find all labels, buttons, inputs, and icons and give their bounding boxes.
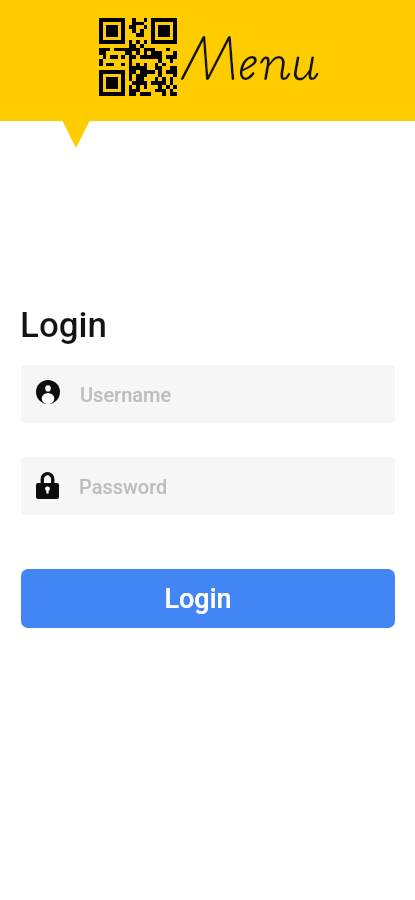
staticText: Menu: [182, 19, 320, 101]
staticText: Login: [164, 583, 232, 615]
button[interactable]: Username: [21, 365, 395, 423]
button[interactable]: Password: [21, 457, 395, 515]
button[interactable]: Login: [21, 569, 395, 628]
staticText: Password: [79, 475, 168, 498]
staticText: Username: [80, 383, 172, 406]
staticText: Login: [20, 305, 108, 346]
